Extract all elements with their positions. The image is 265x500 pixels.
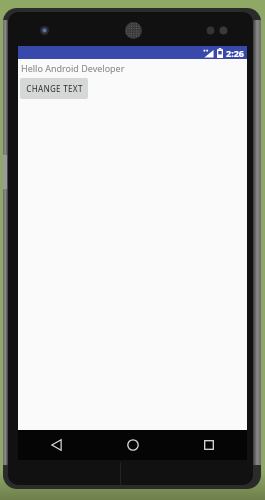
button[interactable]: Home — [95, 430, 171, 460]
button[interactable]: Recent apps — [171, 430, 247, 460]
staticText: CHANGE TEXT — [26, 83, 83, 94]
button[interactable]: CHANGE TEXT — [20, 78, 88, 99]
staticText: 2:26 — [226, 47, 244, 59]
button[interactable]: Back — [18, 430, 95, 460]
staticText: Hello Android Developer — [21, 62, 125, 74]
